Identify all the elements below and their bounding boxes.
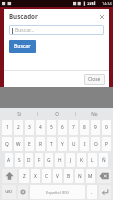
staticText: 1 [6,124,9,131]
button[interactable]: V [53,169,62,183]
button[interactable]: No [76,108,113,119]
button[interactable]: J [66,153,75,167]
staticText: X [34,173,37,180]
button[interactable]: T [47,137,56,151]
button[interactable]: E [25,137,34,151]
staticText: Buscador [9,12,97,20]
button[interactable]: L [88,153,97,167]
button[interactable]: S [15,153,23,167]
button[interactable]: Q [2,137,12,151]
staticText: F [38,157,41,164]
staticText: E [28,141,31,148]
staticText: O [55,111,59,117]
staticText: J [70,157,72,164]
staticText: C [45,173,49,180]
staticText: B [67,173,71,180]
staticText: O [94,141,98,148]
button[interactable]: D [25,153,33,167]
button[interactable]: W [14,137,23,151]
staticText: Ñ [102,157,106,164]
staticText: I [84,141,86,148]
button[interactable]: 4 [36,120,45,135]
button[interactable]: . [87,185,97,199]
staticText: 14:34 [102,1,112,6]
button[interactable]: 1 [2,120,12,135]
button[interactable]: R [36,137,45,151]
staticText: D [27,157,31,164]
staticText: R [39,141,42,148]
button[interactable]: C [42,169,51,183]
button[interactable]: Keyboard settings [18,185,28,199]
staticText: Z [23,173,26,180]
staticText: Close [88,76,101,83]
staticText: 4 [39,124,42,131]
button[interactable]: 6 [58,120,67,135]
button[interactable]: 2 [14,120,23,135]
staticText: S [18,157,21,164]
button[interactable]: 9 [91,120,100,135]
staticText: Q [5,141,9,148]
staticText: N [78,173,82,180]
button[interactable]: G [45,153,53,167]
button[interactable]: Buscar... [9,25,104,35]
button[interactable]: 3 [25,120,34,135]
button[interactable]: O [38,108,75,119]
staticText: . [91,189,93,196]
button[interactable]: 7 [69,120,78,135]
staticText: L [91,157,94,164]
button[interactable]: Close [84,74,105,85]
button[interactable]: F [35,153,43,167]
button[interactable]: Close dialog [97,12,106,21]
button[interactable]: Z [19,169,29,183]
staticText: V [56,173,59,180]
button[interactable]: Ñ [99,153,108,167]
staticText: 6 [61,124,64,131]
staticText: U [72,141,76,148]
staticText: 5 [50,124,53,131]
staticText: Español (ES) [46,190,69,195]
staticText: 8 [83,124,86,131]
staticText: 2 [17,124,20,131]
button[interactable]: 0 [102,120,111,135]
staticText: G [47,157,51,164]
staticText: 73% [87,1,95,6]
button[interactable]: Shift [2,169,17,183]
staticText: 0 [105,124,108,131]
staticText: !#O [5,189,13,195]
staticText: Buscar... [15,27,35,34]
button[interactable]: U [69,137,78,151]
button[interactable]: A [5,153,13,167]
button[interactable]: N [75,169,84,183]
button[interactable]: Buscar [9,40,36,53]
staticText: T [50,141,53,148]
button[interactable]: M [86,169,95,183]
staticText: 9 [94,124,97,131]
staticText: A [7,157,11,164]
staticText: Si [17,111,21,117]
staticText: H [58,157,62,164]
staticText: 3 [28,124,31,131]
button[interactable]: I [80,137,89,151]
staticText: Y [61,141,64,148]
button[interactable]: Backspace [97,169,111,183]
button[interactable]: Enter [99,185,111,199]
button[interactable]: K [77,153,86,167]
staticText: M [88,173,93,180]
button[interactable]: P [102,137,111,151]
staticText: P [105,141,108,148]
button[interactable]: B [64,169,73,183]
button[interactable]: O [91,137,100,151]
staticText: No [91,111,98,117]
button[interactable]: X [31,169,40,183]
button[interactable]: 5 [47,120,56,135]
button[interactable]: H [55,153,64,167]
button[interactable]: !#O [2,185,16,199]
button[interactable]: Y [58,137,67,151]
button[interactable]: Si [0,108,37,119]
staticText: 7 [72,124,75,131]
button[interactable]: 8 [80,120,89,135]
staticText: Buscar [14,43,31,50]
staticText: K [80,157,83,164]
staticText: W [16,141,21,148]
button[interactable]: Español (ES) [30,185,85,199]
